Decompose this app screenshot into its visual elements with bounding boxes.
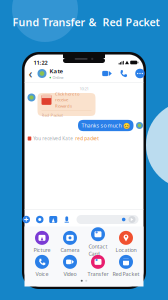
button[interactable]: Microphone [63,215,71,223]
staticText: Video [63,270,76,278]
button[interactable]: Video call [102,70,112,76]
staticText: 10:21 [79,86,88,91]
staticText: 11:22 [33,59,47,66]
staticText: Location [115,246,136,254]
button[interactable]: Location [112,231,140,253]
staticText: Picture [33,246,50,254]
button[interactable]: Transfer [84,255,112,277]
staticText: Red Packet [41,112,63,118]
button[interactable]: Contact Card [84,231,112,253]
staticText: Fund Transfer & Red Packet [12,15,159,29]
staticText: Kate [49,67,63,75]
staticText: Online [53,75,64,80]
button[interactable]: Message field [76,214,138,224]
staticText: Contact Card [88,243,107,257]
button[interactable]: Back [26,68,34,79]
button[interactable]: Red Packet [112,255,140,277]
button[interactable]: More options [135,68,145,78]
staticText: Transfer [87,270,108,278]
button[interactable]: Add attachment [22,215,30,223]
button[interactable]: Video [56,255,84,277]
staticText: Rewards [55,103,72,109]
staticText: Thanks so much [81,122,121,129]
staticText: Click here to receive [55,91,80,102]
staticText: Red Packet [112,270,139,278]
staticText: You received Kate [33,135,73,142]
button[interactable]: Voice call [119,69,128,78]
staticText: Camera [60,246,79,254]
button[interactable]: Photos [49,215,57,223]
staticText: ‹ [28,65,32,82]
button[interactable]: Camera [56,231,84,253]
button[interactable]: Voice [28,255,56,277]
button[interactable]: Kate [37,67,77,80]
button[interactable]: Picture [28,231,56,253]
staticText: Voice [35,270,48,278]
staticText: 😊 [123,122,130,129]
button[interactable]: Camera [36,215,44,223]
button[interactable]: Click here to receive [37,93,95,116]
staticText: red packet [75,135,99,142]
